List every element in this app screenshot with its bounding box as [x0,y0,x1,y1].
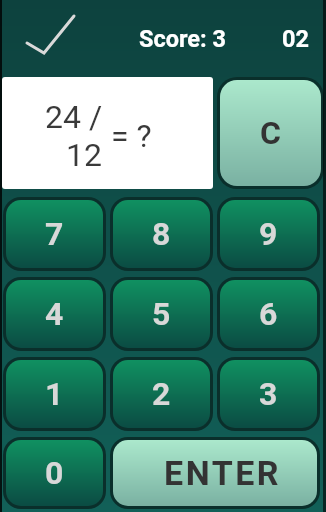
staticText: 02 [282,25,309,53]
staticText: 6 [259,295,278,333]
button[interactable]: 6 [217,277,320,351]
staticText: 4 [45,295,64,333]
staticText: = ? [111,117,152,155]
staticText: 1 [45,375,64,413]
staticText: 2 [152,375,171,413]
staticText: 3 [259,375,278,413]
staticText: 8 [152,215,171,253]
button[interactable]: 9 [217,197,320,271]
button[interactable]: 4 [3,277,106,351]
staticText: 7 [45,215,64,253]
button[interactable]: 7 [3,197,106,271]
staticText: C [260,114,281,152]
button[interactable]: ENTER [110,437,320,509]
button[interactable]: 2 [110,357,213,431]
staticText: Score: 3 [139,25,227,53]
staticText: 9 [259,215,278,253]
staticText: 0 [45,454,64,492]
staticText: 5 [152,295,171,333]
button[interactable] [26,14,74,54]
button[interactable]: 5 [110,277,213,351]
staticText: 12 [66,136,102,174]
button[interactable]: C [217,77,324,189]
button[interactable]: 0 [3,437,106,509]
staticText: 24 / [45,98,103,136]
button[interactable]: 1 [3,357,106,431]
button[interactable]: 8 [110,197,213,271]
button[interactable]: 3 [217,357,320,431]
staticText: ENTER [164,453,282,493]
